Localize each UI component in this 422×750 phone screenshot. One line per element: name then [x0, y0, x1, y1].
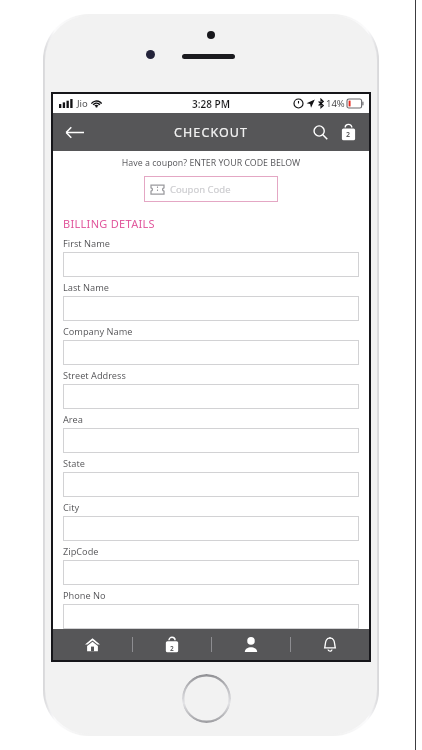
- button[interactable]: [63, 384, 359, 409]
- button[interactable]: Coupon Code: [144, 176, 278, 202]
- staticText: Jio: [77, 97, 88, 110]
- button[interactable]: Cart, 2 items: [335, 119, 361, 145]
- staticText: Coupon Code: [170, 183, 231, 196]
- staticText: First Name: [63, 237, 110, 250]
- button[interactable]: Search: [307, 119, 333, 145]
- button[interactable]: Home: [53, 629, 132, 660]
- button[interactable]: [63, 560, 359, 585]
- button[interactable]: Account: [212, 629, 290, 660]
- button[interactable]: [63, 340, 359, 365]
- staticText: City: [63, 501, 80, 514]
- button[interactable]: [63, 296, 359, 321]
- staticText: ZipCode: [63, 545, 99, 558]
- button[interactable]: Cart, 2 items: [133, 629, 211, 660]
- staticText: BILLING DETAILS: [63, 216, 155, 231]
- button[interactable]: [63, 252, 359, 277]
- staticText: 2: [170, 644, 174, 653]
- button[interactable]: [63, 604, 359, 629]
- button[interactable]: [63, 428, 359, 453]
- staticText: Phone No: [63, 589, 106, 602]
- staticText: State: [63, 457, 86, 470]
- staticText: CHECKOUT: [174, 124, 249, 141]
- staticText: Last Name: [63, 281, 109, 294]
- button[interactable]: [63, 472, 359, 497]
- staticText: 14%: [326, 97, 345, 110]
- staticText: 2: [346, 130, 351, 140]
- staticText: 3:28 PM: [192, 97, 230, 111]
- button[interactable]: Back: [59, 117, 89, 147]
- button[interactable]: [63, 516, 359, 541]
- staticText: Have a coupon? ENTER YOUR CODE BELOW: [53, 157, 369, 169]
- staticText: Area: [63, 413, 83, 426]
- staticText: Company Name: [63, 325, 133, 338]
- button[interactable]: Notifications: [291, 629, 369, 660]
- other: Home button: [182, 674, 231, 723]
- staticText: Street Address: [63, 369, 126, 382]
